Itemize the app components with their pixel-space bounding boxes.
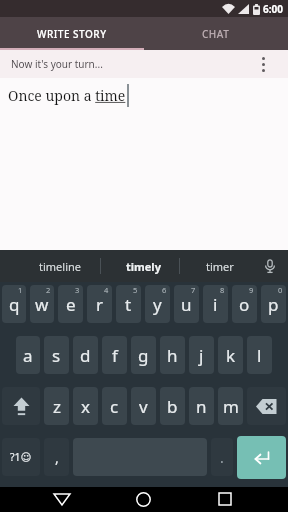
staticText: j bbox=[199, 344, 204, 367]
button[interactable] bbox=[2, 387, 40, 425]
staticText: m bbox=[223, 395, 239, 418]
staticText: 3 bbox=[75, 285, 80, 295]
button[interactable]: n bbox=[189, 387, 214, 425]
staticText: 2 bbox=[46, 285, 51, 295]
button[interactable] bbox=[134, 491, 153, 508]
staticText: i bbox=[213, 293, 218, 316]
button[interactable]: h bbox=[160, 336, 185, 374]
staticText: timeline bbox=[39, 259, 81, 274]
staticText: a bbox=[23, 344, 33, 367]
staticText: b bbox=[167, 395, 178, 418]
button[interactable]: p bbox=[261, 285, 286, 323]
button[interactable]: . bbox=[211, 438, 233, 476]
staticText: d bbox=[80, 344, 91, 367]
staticText: 4 bbox=[104, 285, 109, 295]
button[interactable]: w bbox=[30, 285, 54, 323]
button[interactable]: j bbox=[189, 336, 214, 374]
staticText: x bbox=[81, 395, 90, 418]
button[interactable] bbox=[51, 491, 73, 508]
staticText: v bbox=[139, 395, 148, 418]
button[interactable]: y bbox=[145, 285, 170, 323]
button[interactable]: timer bbox=[180, 250, 252, 282]
button[interactable]: f bbox=[102, 336, 127, 374]
button[interactable] bbox=[252, 250, 288, 282]
button[interactable]: l bbox=[247, 336, 272, 374]
staticText: q bbox=[9, 293, 20, 316]
button[interactable]: c bbox=[102, 387, 127, 425]
staticText: f bbox=[112, 344, 118, 367]
button[interactable]: d bbox=[73, 336, 98, 374]
staticText: Once upon a time bbox=[8, 86, 126, 105]
staticText: s bbox=[52, 344, 61, 367]
staticText: k bbox=[226, 344, 236, 367]
button[interactable]: , bbox=[44, 438, 69, 476]
button[interactable]: o bbox=[232, 285, 257, 323]
staticText: n bbox=[196, 395, 207, 418]
button[interactable]: t bbox=[116, 285, 141, 323]
button[interactable] bbox=[215, 491, 235, 508]
staticText: 9 bbox=[249, 285, 254, 295]
staticText: l bbox=[257, 344, 262, 367]
button[interactable] bbox=[262, 57, 265, 72]
staticText: p bbox=[268, 293, 279, 316]
staticText: h bbox=[167, 344, 178, 367]
staticText: timer bbox=[206, 259, 234, 274]
staticText: u bbox=[181, 293, 192, 316]
staticText: t bbox=[125, 293, 132, 316]
staticText: y bbox=[153, 293, 162, 316]
staticText: CHAT bbox=[202, 27, 230, 41]
button[interactable]: a bbox=[16, 336, 40, 374]
staticText: 6 bbox=[162, 285, 167, 295]
staticText: c bbox=[110, 395, 119, 418]
staticText: 6:00 bbox=[263, 2, 283, 16]
button[interactable]: r bbox=[87, 285, 112, 323]
button[interactable]: u bbox=[174, 285, 199, 323]
button[interactable]: v bbox=[131, 387, 156, 425]
button[interactable]: x bbox=[73, 387, 98, 425]
staticText: , bbox=[55, 448, 59, 467]
button[interactable]: WRITE STORY bbox=[0, 17, 144, 50]
staticText: w bbox=[35, 293, 49, 316]
staticText: . bbox=[220, 448, 224, 467]
button[interactable]: ?1☺ bbox=[2, 438, 40, 476]
button[interactable]: CHAT bbox=[144, 17, 288, 50]
button[interactable]: g bbox=[131, 336, 156, 374]
button[interactable]: e bbox=[58, 285, 83, 323]
button[interactable]: b bbox=[160, 387, 185, 425]
button[interactable] bbox=[237, 436, 286, 479]
staticText: ?1☺ bbox=[10, 450, 32, 464]
staticText: e bbox=[66, 293, 76, 316]
button[interactable]: i bbox=[203, 285, 228, 323]
staticText: 5 bbox=[133, 285, 138, 295]
staticText: WRITE STORY bbox=[37, 27, 107, 41]
staticText: z bbox=[53, 395, 61, 418]
staticText: 1 bbox=[18, 285, 23, 295]
staticText: 8 bbox=[220, 285, 225, 295]
button[interactable]: z bbox=[44, 387, 69, 425]
staticText: Now it's your turn... bbox=[11, 57, 103, 71]
staticText: 7 bbox=[191, 285, 196, 295]
button[interactable]: timely bbox=[101, 250, 179, 282]
button[interactable]: q bbox=[2, 285, 26, 323]
button[interactable]: m bbox=[218, 387, 243, 425]
staticText: timely bbox=[126, 259, 161, 274]
button[interactable]: s bbox=[44, 336, 69, 374]
staticText: 0 bbox=[278, 285, 283, 295]
button[interactable] bbox=[247, 387, 286, 425]
staticText: r bbox=[96, 293, 104, 316]
button[interactable]: timeline bbox=[0, 250, 100, 282]
staticText: o bbox=[239, 293, 250, 316]
staticText: g bbox=[138, 344, 149, 367]
button[interactable]: k bbox=[218, 336, 243, 374]
